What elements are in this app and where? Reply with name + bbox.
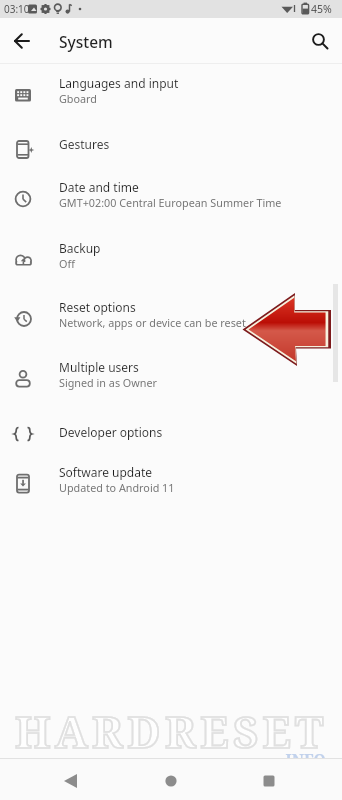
button[interactable] xyxy=(6,23,38,55)
staticText: Off xyxy=(59,256,75,271)
staticText: Languages and input xyxy=(59,75,179,91)
button[interactable]: Reset options xyxy=(0,291,342,349)
button[interactable]: Gestures xyxy=(0,128,342,172)
staticText: 45% xyxy=(311,2,332,16)
button[interactable] xyxy=(56,767,84,795)
staticText: Updated to Android 11 xyxy=(59,480,175,495)
staticText: Signed in as Owner xyxy=(59,375,158,390)
button[interactable]: Developer options xyxy=(0,416,342,460)
staticText: HARDRESET xyxy=(15,701,328,760)
button[interactable] xyxy=(255,767,283,795)
staticText: Network, apps or device can be reset xyxy=(59,315,246,330)
button[interactable] xyxy=(303,23,335,55)
staticText: Date and time xyxy=(59,179,139,195)
button[interactable]: Backup xyxy=(0,232,342,290)
button[interactable] xyxy=(157,767,185,795)
staticText: 03:10 xyxy=(4,2,30,16)
button[interactable]: Software update xyxy=(0,456,342,514)
staticText: Gestures xyxy=(59,136,110,152)
staticText: Backup xyxy=(59,240,101,256)
button[interactable]: Multiple users xyxy=(0,351,342,409)
staticText: Reset options xyxy=(59,299,136,315)
staticText: Software update xyxy=(59,464,153,480)
staticText: HARDRESET xyxy=(15,701,328,760)
staticText: GMT+02:00 Central European Summer Time xyxy=(59,195,282,210)
staticText: System xyxy=(59,31,113,52)
staticText: Gboard xyxy=(59,91,97,106)
button[interactable]: Languages and input xyxy=(0,67,342,125)
staticText: Developer options xyxy=(59,424,163,440)
staticText: .INFO xyxy=(281,749,326,770)
button[interactable]: Date and time xyxy=(0,171,342,229)
staticText: Multiple users xyxy=(59,359,139,375)
